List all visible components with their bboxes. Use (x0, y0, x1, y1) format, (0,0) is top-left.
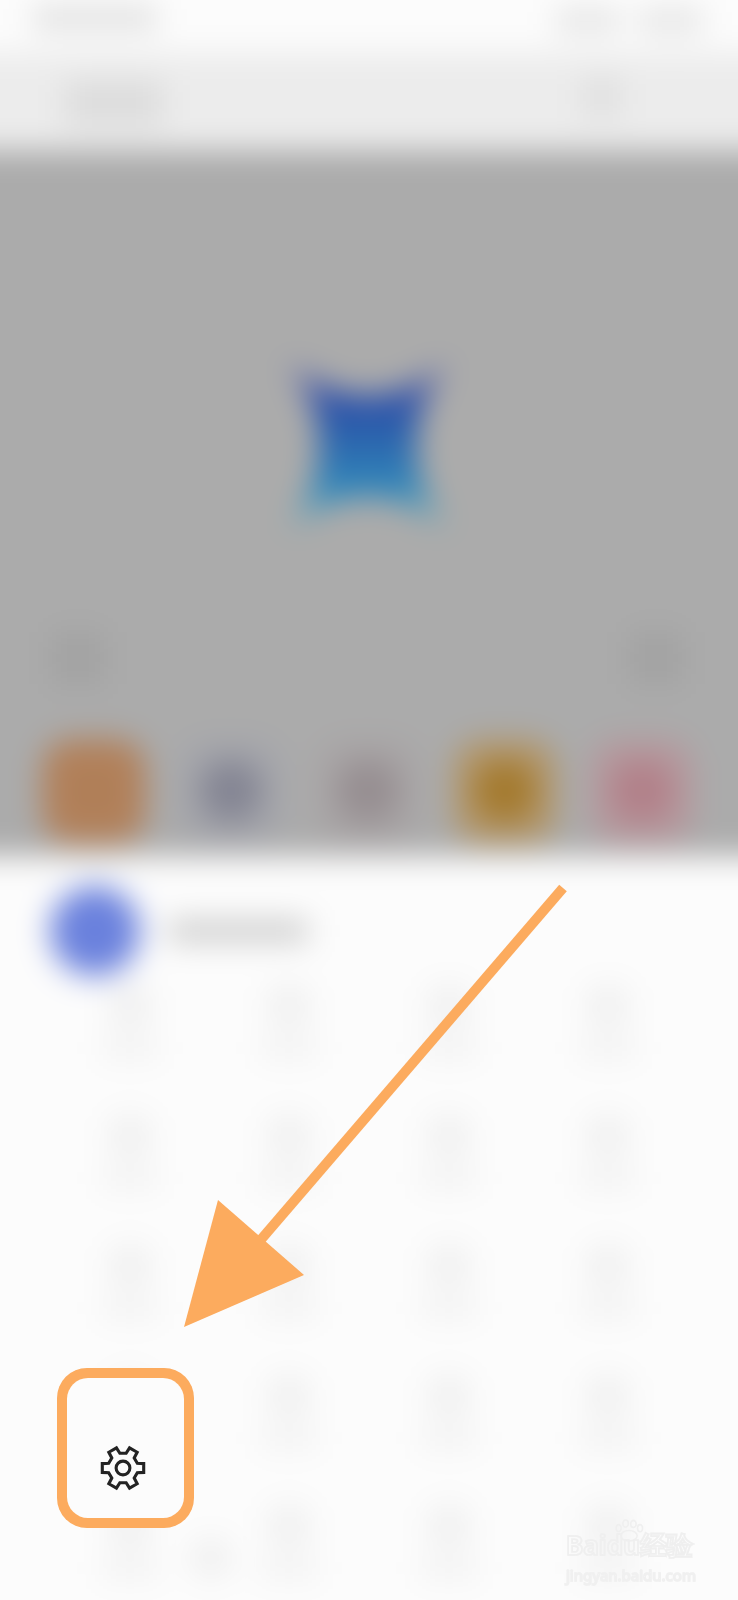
button[interactable] (101, 985, 159, 1059)
staticText: jingyan.baidu.com (566, 1565, 696, 1585)
button[interactable] (579, 1505, 637, 1579)
button[interactable] (420, 985, 478, 1059)
button[interactable] (590, 739, 694, 843)
button[interactable] (101, 1505, 159, 1579)
button[interactable] (101, 1375, 159, 1449)
button[interactable] (42, 739, 146, 843)
button[interactable] (260, 1245, 318, 1319)
button[interactable]: Settings (67, 1378, 184, 1518)
button[interactable] (453, 739, 557, 843)
button[interactable] (316, 739, 420, 843)
staticText: Baidu经验 (566, 1527, 692, 1563)
button[interactable] (260, 1115, 318, 1189)
button[interactable] (179, 739, 283, 843)
button[interactable] (50, 884, 738, 978)
